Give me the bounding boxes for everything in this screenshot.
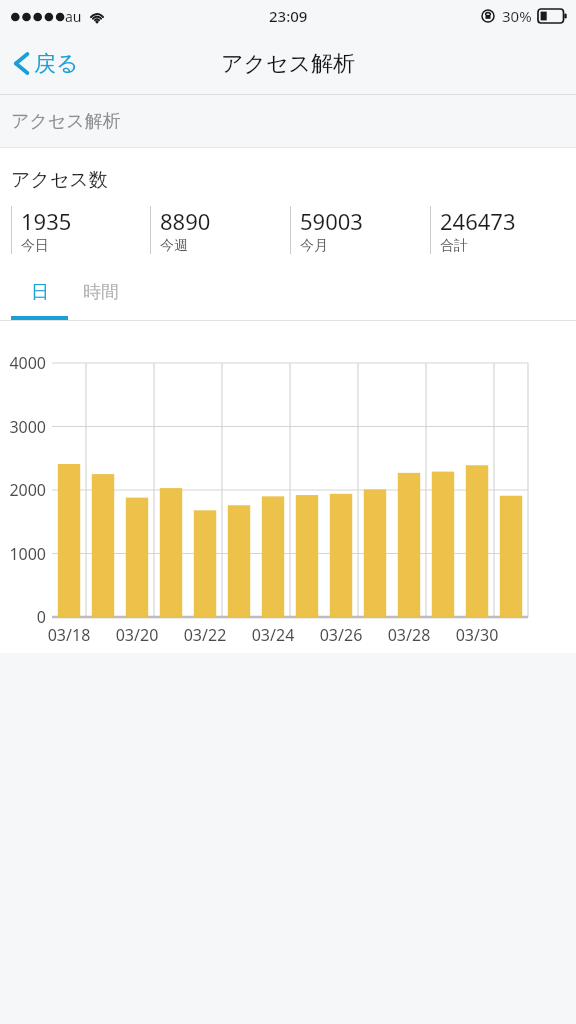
staticText: 合計 xyxy=(440,237,468,255)
button[interactable]: 日 xyxy=(11,281,68,320)
button[interactable]: 時間 xyxy=(68,281,134,320)
staticText: 03/22 xyxy=(172,624,238,646)
staticText: 0 xyxy=(0,606,46,628)
staticText: 時間 xyxy=(83,281,119,304)
staticText: 1000 xyxy=(0,543,46,565)
staticText: 23:09 xyxy=(269,6,308,26)
staticText: 今日 xyxy=(21,237,49,255)
staticText: 8890 xyxy=(160,206,211,236)
staticText: アクセス解析 xyxy=(221,50,356,78)
staticText: 戻る xyxy=(34,50,79,78)
button[interactable]: 1935 xyxy=(11,206,150,255)
staticText: au xyxy=(65,7,82,26)
staticText: 03/26 xyxy=(308,624,374,646)
staticText: 30% xyxy=(502,6,532,26)
staticText: アクセス解析 xyxy=(11,110,121,133)
staticText: 今月 xyxy=(300,237,328,255)
staticText: 今週 xyxy=(160,237,188,255)
staticText: 03/24 xyxy=(240,624,306,646)
other: 戻る xyxy=(13,49,31,78)
button[interactable]: 59003 xyxy=(290,206,430,255)
staticText: 1935 xyxy=(21,206,72,236)
staticText: 03/28 xyxy=(376,624,442,646)
staticText: 3000 xyxy=(0,416,46,438)
staticText: 03/20 xyxy=(104,624,170,646)
staticText: 日 xyxy=(31,281,49,304)
staticText: アクセス数 xyxy=(11,168,108,192)
staticText: 59003 xyxy=(300,206,363,236)
button[interactable]: 戻る xyxy=(8,42,84,85)
staticText: 03/18 xyxy=(36,624,102,646)
button[interactable]: 246473 xyxy=(430,206,570,255)
staticText: 03/30 xyxy=(444,624,510,646)
button[interactable]: 8890 xyxy=(150,206,290,255)
staticText: 4000 xyxy=(0,352,46,374)
staticText: 2000 xyxy=(0,479,46,501)
staticText: 246473 xyxy=(440,206,516,236)
